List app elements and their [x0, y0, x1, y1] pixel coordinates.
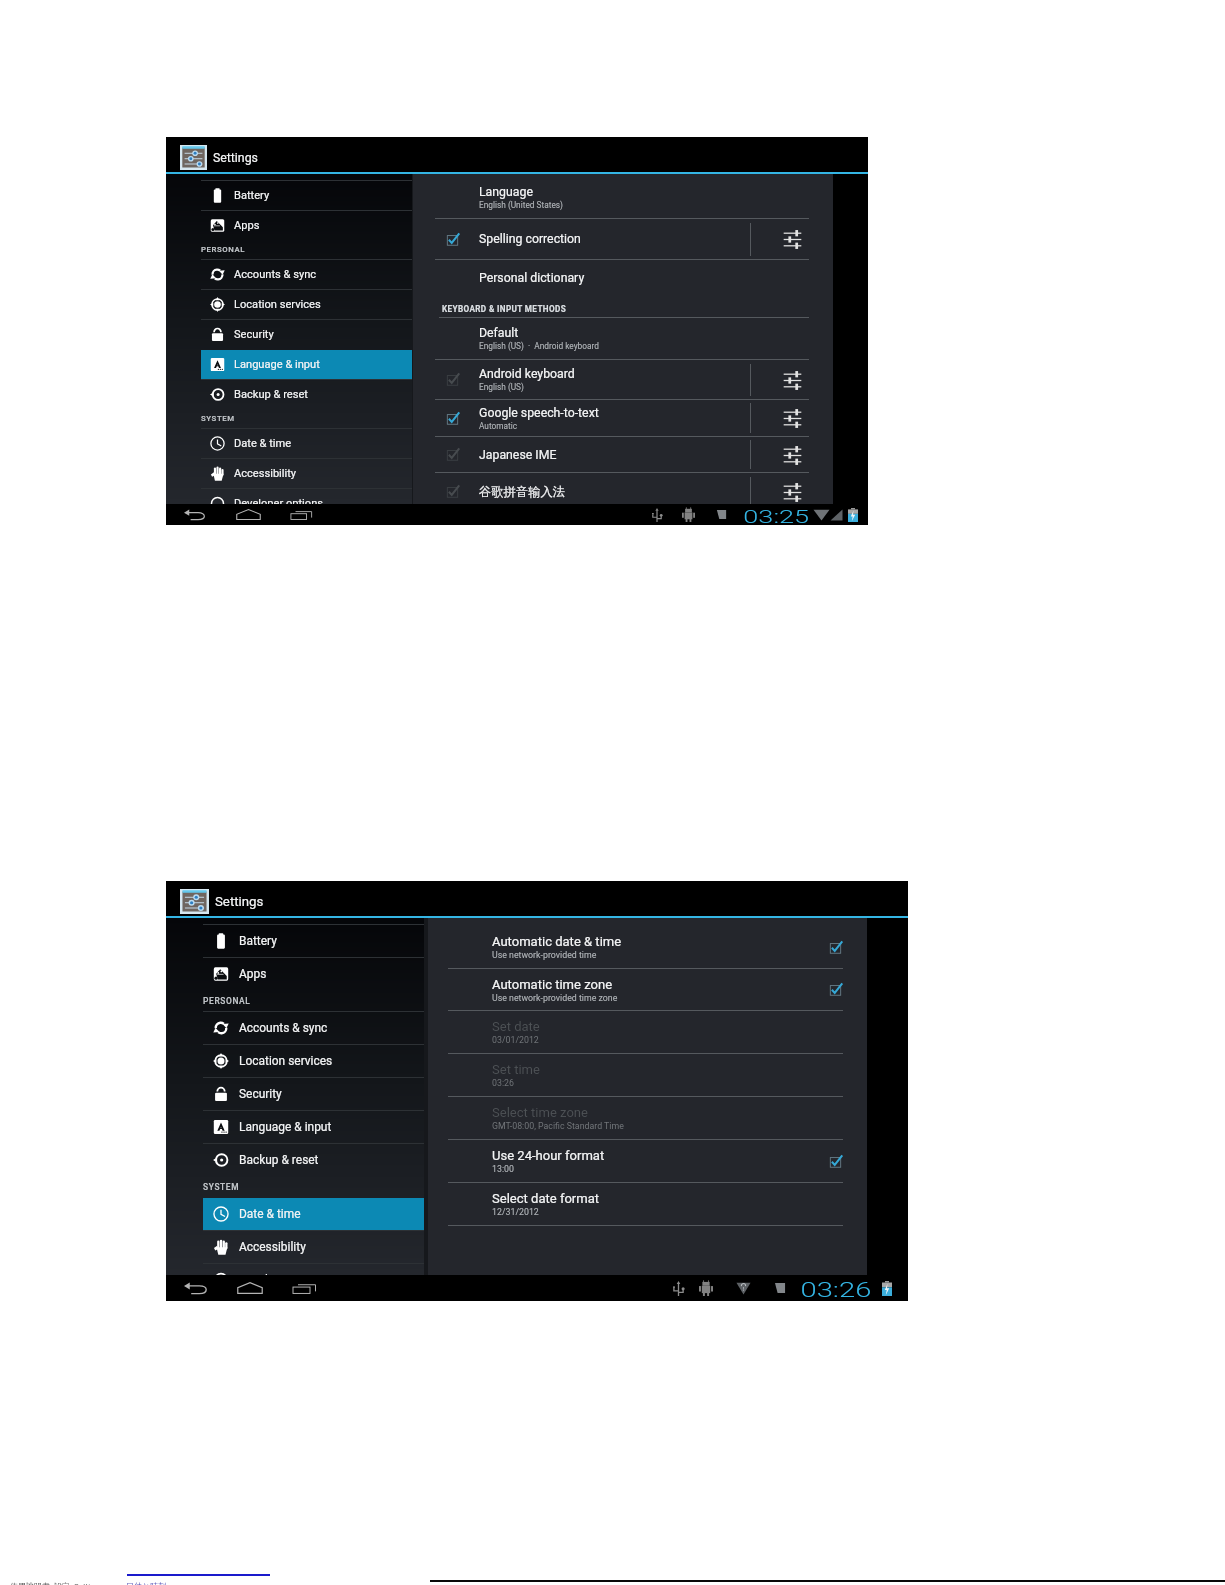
- staticText: Accessibility: [239, 1240, 306, 1254]
- button[interactable]: Set date: [428, 1011, 867, 1053]
- staticText: GMT-08:00, Pacific Standard Time: [492, 1121, 624, 1131]
- button[interactable]: Default: [413, 318, 833, 359]
- staticText: 03:25: [743, 505, 810, 524]
- staticText: 12/31/2012: [492, 1207, 539, 1217]
- button[interactable]: Settings app: [180, 889, 209, 914]
- staticText: Battery: [234, 189, 270, 202]
- staticText: 使用說明書 設定 Settings: [10, 1581, 104, 1585]
- button[interactable]: Automatic date & time: [428, 926, 867, 968]
- staticText: Set time: [492, 1062, 540, 1077]
- button[interactable]: Apps: [203, 958, 424, 990]
- button[interactable]: Spelling correction: [413, 219, 833, 259]
- button[interactable]: Back: [175, 504, 215, 525]
- button[interactable]: Accounts & sync: [203, 1012, 424, 1044]
- button[interactable]: Developer options: [203, 1264, 424, 1275]
- staticText: Date & time: [234, 437, 292, 450]
- staticText: Google speech-to-text: [479, 406, 599, 420]
- button[interactable]: Security: [203, 1078, 424, 1110]
- button[interactable]: Android keyboard: [413, 360, 833, 399]
- staticText: Security: [239, 1087, 282, 1101]
- button[interactable]: Google speech-to-text: [413, 400, 833, 436]
- button[interactable]: Location services: [201, 290, 412, 319]
- staticText: Spelling correction: [479, 232, 581, 246]
- button[interactable]: Input method settings: [777, 403, 807, 433]
- button[interactable]: Home: [228, 504, 268, 525]
- button[interactable]: Backup & reset: [203, 1144, 424, 1176]
- button[interactable]: Recent apps: [281, 504, 321, 525]
- staticText: Developer options: [239, 1273, 335, 1275]
- button[interactable]: Date & time: [201, 429, 412, 458]
- button[interactable]: Location services: [203, 1045, 424, 1077]
- staticText: Select date format: [492, 1191, 600, 1206]
- button[interactable]: Home: [230, 1275, 270, 1301]
- staticText: Location services: [234, 298, 321, 311]
- button[interactable]: Set time: [428, 1054, 867, 1096]
- staticText: Select time zone: [492, 1105, 588, 1120]
- button[interactable]: Settings app: [180, 145, 207, 170]
- button[interactable]: 谷歌拼音输入法: [413, 473, 833, 504]
- staticText: English (US): [479, 382, 524, 392]
- button[interactable]: Backup & reset: [201, 380, 412, 409]
- staticText: Security: [234, 328, 274, 341]
- button[interactable]: Recent apps: [284, 1275, 324, 1301]
- staticText: 13:00: [492, 1164, 514, 1174]
- staticText: Android keyboard: [479, 367, 575, 381]
- button[interactable]: Battery: [203, 925, 424, 957]
- staticText: Developer options: [234, 497, 323, 504]
- staticText: Language & input: [239, 1120, 332, 1134]
- staticText: Use 24-hour format: [492, 1148, 605, 1163]
- staticText: Settings: [215, 894, 264, 910]
- button[interactable]: Japanese IME: [413, 437, 833, 472]
- staticText: SYSTEM: [203, 1182, 240, 1192]
- staticText: Date & time: [239, 1207, 301, 1221]
- staticText: 03:26: [492, 1078, 514, 1088]
- button[interactable]: Language & input: [203, 1111, 424, 1143]
- button[interactable]: Automatic time zone: [428, 969, 867, 1010]
- button[interactable]: Back: [176, 1275, 216, 1301]
- staticText: Use network-provided time: [492, 950, 597, 960]
- staticText: Automatic time zone: [492, 977, 613, 992]
- staticText: Apps: [239, 967, 267, 981]
- button[interactable]: Date & time: [203, 1198, 424, 1230]
- staticText: Settings: [213, 151, 258, 165]
- button[interactable]: Developer options: [201, 489, 412, 504]
- button[interactable]: Select date format: [428, 1183, 867, 1225]
- staticText: 谷歌拼音输入法: [479, 484, 566, 499]
- button[interactable]: Language & input: [201, 350, 412, 379]
- staticText: Use network-provided time zone: [492, 993, 618, 1003]
- staticText: Personal dictionary: [479, 271, 585, 285]
- staticText: Automatic date & time: [492, 934, 622, 949]
- staticText: English (US) · Android keyboard: [479, 341, 599, 351]
- button[interactable]: Input method settings: [777, 477, 807, 504]
- staticText: Accounts & sync: [239, 1021, 328, 1035]
- staticText: Language: [479, 185, 533, 199]
- staticText: Automatic: [479, 421, 518, 431]
- staticText: Set date: [492, 1019, 540, 1034]
- button[interactable]: Input method settings: [777, 365, 807, 395]
- staticText: Backup & reset: [234, 388, 308, 401]
- button[interactable]: Personal dictionary: [413, 260, 833, 296]
- staticText: Language & input: [234, 358, 320, 371]
- button[interactable]: Input method settings: [777, 440, 807, 470]
- button[interactable]: Language: [413, 177, 833, 218]
- staticText: SYSTEM: [201, 414, 235, 423]
- button[interactable]: Use 24-hour format: [428, 1140, 867, 1182]
- staticText: PERSONAL: [201, 245, 246, 254]
- button[interactable]: Battery: [201, 181, 412, 210]
- button[interactable]: Select time zone: [428, 1097, 867, 1139]
- button[interactable]: Input method settings: [777, 224, 807, 254]
- button[interactable]: Apps: [201, 211, 412, 240]
- button[interactable]: Accessibility: [203, 1231, 424, 1263]
- button[interactable]: Accessibility: [201, 459, 412, 488]
- staticText: 03:26: [800, 1278, 872, 1298]
- staticText: Apps: [234, 219, 260, 232]
- button[interactable]: Accounts & sync: [201, 260, 412, 289]
- staticText: Backup & reset: [239, 1153, 319, 1167]
- staticText: PERSONAL: [203, 996, 251, 1006]
- button[interactable]: Security: [201, 320, 412, 349]
- staticText: Japanese IME: [479, 448, 557, 462]
- staticText: Accessibility: [234, 467, 297, 480]
- staticText: Location services: [239, 1054, 333, 1068]
- staticText: 日付と時刻: [126, 1581, 167, 1585]
- staticText: 03/01/2012: [492, 1035, 539, 1045]
